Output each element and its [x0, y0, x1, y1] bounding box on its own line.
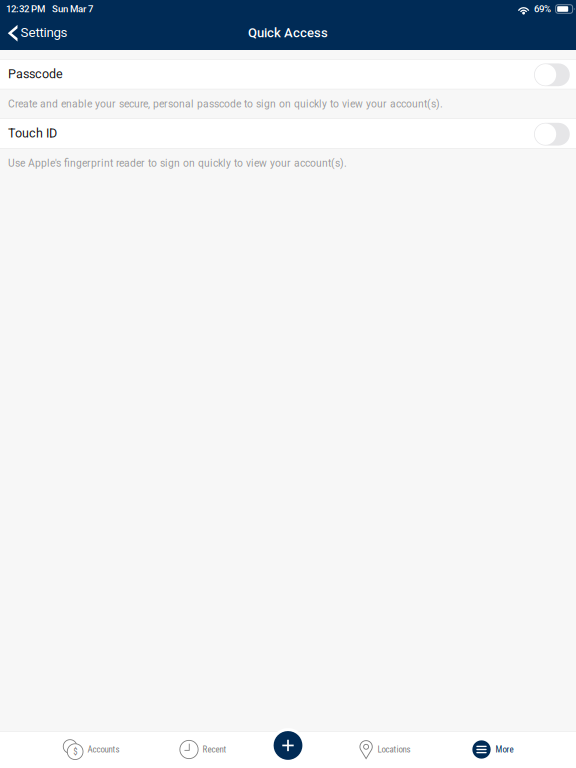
button[interactable]: Add: [271, 728, 305, 763]
staticText: Sun Mar 7: [52, 3, 93, 15]
button[interactable]: Settings: [0, 18, 77, 50]
staticText: Accounts: [87, 744, 119, 755]
staticText: 69%: [534, 3, 551, 15]
staticText: Quick Access: [248, 25, 328, 40]
button[interactable]: More: [472, 731, 514, 768]
staticText: Recent: [203, 744, 227, 755]
button[interactable]: Locations: [357, 731, 412, 768]
button[interactable]: $: [62, 731, 120, 768]
staticText: 12:32 PM: [6, 3, 45, 15]
button[interactable]: Recent: [179, 731, 228, 768]
staticText: Settings: [20, 25, 67, 40]
button[interactable]: Passcode: [0, 59, 576, 89]
staticText: $: [73, 746, 77, 757]
staticText: Locations: [377, 744, 410, 755]
staticText: Passcode: [8, 67, 63, 81]
staticText: More: [495, 744, 513, 755]
staticText: Create and enable your secure, personal …: [8, 98, 443, 110]
staticText: Use Apple's fingerprint reader to sign o…: [8, 157, 347, 169]
staticText: Touch ID: [8, 126, 57, 141]
button[interactable]: Touch ID: [0, 118, 576, 149]
